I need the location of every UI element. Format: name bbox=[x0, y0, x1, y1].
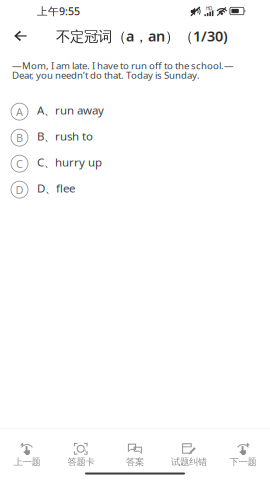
staticText: C、hurry up bbox=[37, 154, 102, 170]
staticText: 下一题 bbox=[229, 456, 256, 468]
staticText: B bbox=[16, 130, 23, 145]
staticText: 答案 bbox=[126, 456, 144, 468]
staticText: 不定冠词（a，an）（1/30) bbox=[56, 26, 228, 46]
button[interactable]: 答题卡 bbox=[54, 443, 108, 467]
staticText: A、run away bbox=[37, 102, 104, 118]
button[interactable]: 答案 bbox=[108, 443, 162, 467]
staticText: 答题卡 bbox=[67, 456, 94, 468]
button[interactable]: 下一题 bbox=[216, 443, 270, 467]
button[interactable]: C bbox=[0, 151, 270, 177]
button[interactable]: 上一题 bbox=[0, 443, 54, 467]
staticText: HD bbox=[206, 5, 212, 11]
staticText: 试题纠错 bbox=[171, 456, 207, 468]
button[interactable]: 试题纠错 bbox=[162, 443, 216, 467]
staticText: A bbox=[16, 104, 23, 119]
staticText: B、rush to bbox=[37, 128, 93, 144]
button[interactable]: B bbox=[0, 125, 270, 151]
staticText: —Mom, I am late. I have to run off to th… bbox=[12, 59, 234, 82]
staticText: 上午9:55 bbox=[37, 4, 80, 18]
button[interactable]: 返回 bbox=[0, 22, 37, 50]
staticText: D bbox=[15, 182, 23, 197]
button[interactable]: D bbox=[0, 177, 270, 203]
staticText: 上一题 bbox=[13, 456, 40, 468]
staticText: D、flee bbox=[37, 180, 75, 196]
staticText: C bbox=[16, 156, 23, 171]
button[interactable]: A bbox=[0, 99, 270, 125]
